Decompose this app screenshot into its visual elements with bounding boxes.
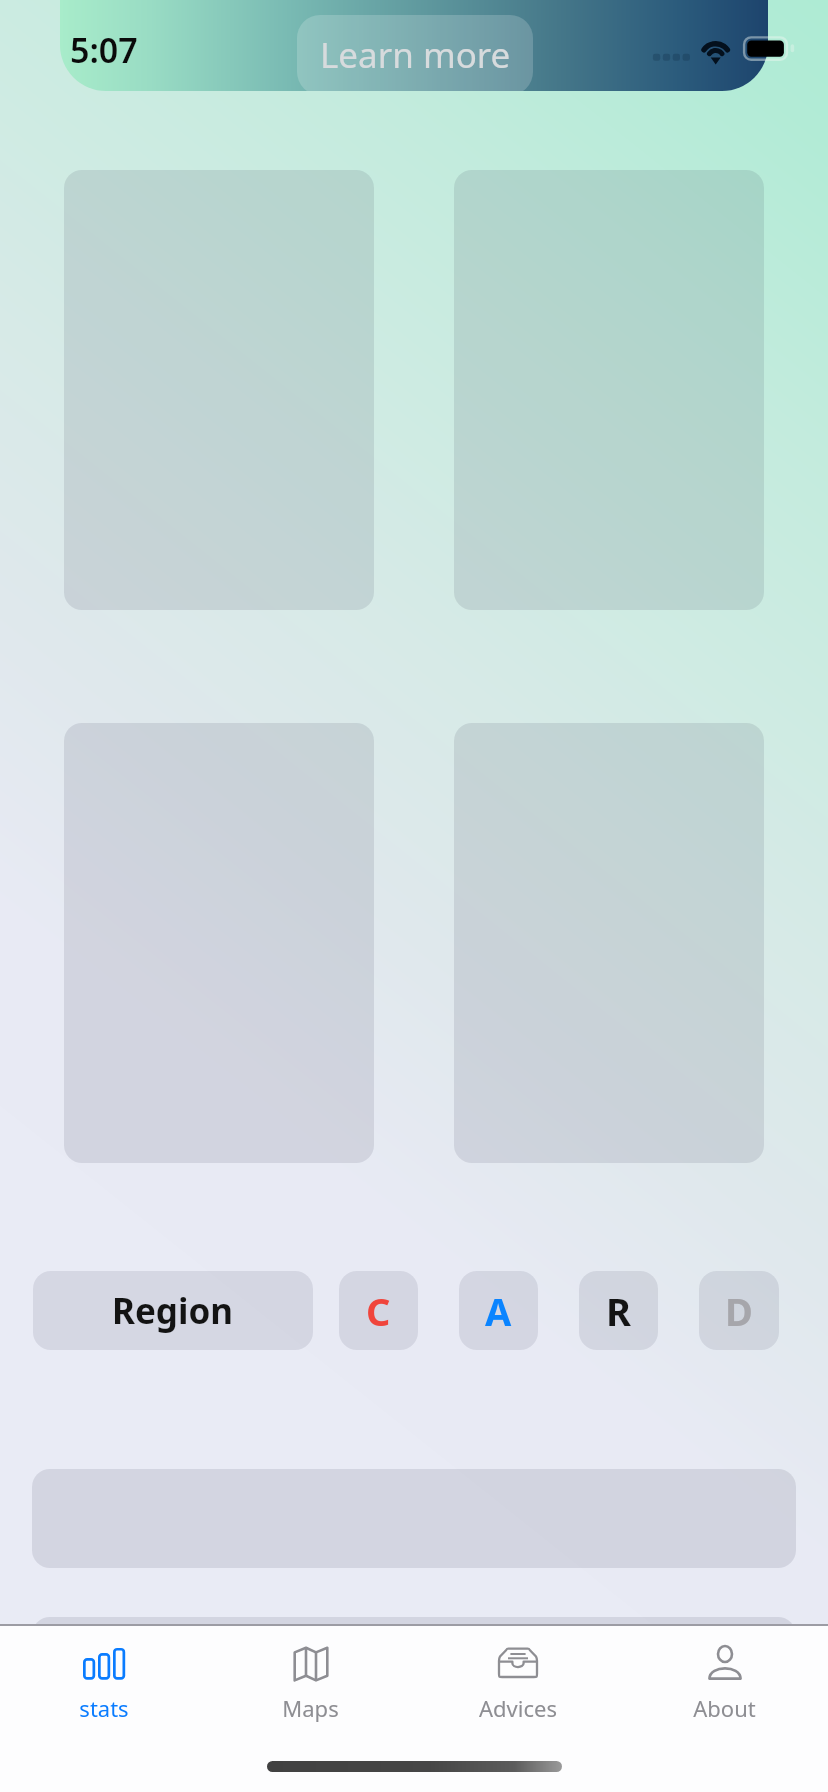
other: Status	[648, 33, 800, 66]
button[interactable]: stats	[0, 1641, 207, 1723]
staticText: Learn more	[320, 31, 511, 79]
button[interactable]: D	[699, 1271, 779, 1350]
button[interactable]	[32, 1617, 796, 1716]
button[interactable]: R	[579, 1271, 658, 1350]
button[interactable]	[64, 723, 374, 1163]
staticText: A	[485, 1285, 512, 1337]
staticText: C	[366, 1285, 391, 1337]
button[interactable]: A	[459, 1271, 538, 1350]
staticText: R	[606, 1285, 631, 1337]
staticText: Advices	[479, 1693, 557, 1723]
button[interactable]: Learn more	[297, 15, 533, 91]
staticText: D	[725, 1285, 753, 1337]
button[interactable]	[64, 170, 374, 610]
button[interactable]: Region	[33, 1271, 313, 1350]
staticText: About	[693, 1693, 756, 1723]
button[interactable]: C	[339, 1271, 418, 1350]
staticText: stats	[79, 1693, 129, 1723]
staticText: Region	[112, 1287, 234, 1335]
staticText: 5:07	[70, 27, 138, 73]
staticText: Maps	[282, 1693, 339, 1723]
button[interactable]: About	[621, 1641, 828, 1723]
button[interactable]: Advices	[414, 1641, 621, 1723]
button[interactable]	[454, 170, 764, 610]
button[interactable]	[454, 723, 764, 1163]
button[interactable]: Maps	[207, 1641, 414, 1723]
